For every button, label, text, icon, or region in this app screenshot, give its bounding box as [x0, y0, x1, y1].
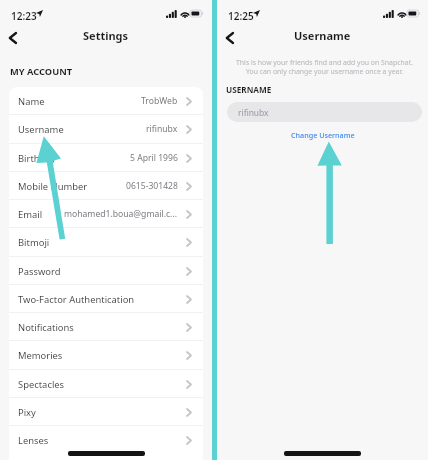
staticText: rifinubx	[238, 107, 269, 118]
button[interactable]: Notifications	[9, 313, 203, 341]
staticText: Password	[18, 265, 61, 278]
button[interactable]: Two-Factor Authentication	[9, 285, 203, 313]
staticText: 12:23	[11, 9, 37, 23]
staticText: USERNAME	[226, 84, 272, 95]
staticText: 0615-301428	[126, 180, 178, 192]
staticText: MY ACCOUNT	[10, 65, 73, 78]
staticText: Memories	[18, 349, 63, 362]
button[interactable]: Name	[9, 87, 203, 115]
button[interactable]: Back	[0, 27, 24, 49]
button[interactable]: Memories	[9, 341, 203, 369]
button[interactable]: Change Username	[285, 128, 361, 142]
button[interactable]: Bitmoji	[9, 228, 203, 256]
staticText: Username	[294, 28, 351, 43]
button[interactable]: Birthday	[9, 144, 203, 172]
staticText: 12:25	[228, 9, 254, 23]
button[interactable]: Email	[9, 200, 203, 228]
staticText: 5 April 1996	[130, 152, 178, 164]
button[interactable]: Back	[217, 27, 241, 49]
staticText: TrobWeb	[141, 95, 178, 107]
button[interactable]: Password	[9, 257, 203, 285]
staticText: rifinubx	[146, 123, 178, 135]
staticText: Two-Factor Authentication	[18, 293, 135, 306]
button[interactable]: rifinubx	[227, 102, 422, 122]
staticText: Bitmoji	[18, 236, 50, 249]
staticText: Mobile Number	[18, 180, 88, 193]
staticText: Spectacles	[18, 378, 65, 391]
button[interactable]: Lenses	[9, 426, 203, 454]
staticText: Lenses	[18, 434, 49, 447]
button[interactable]: Pixy	[9, 398, 203, 426]
staticText: Settings	[83, 28, 129, 43]
button[interactable]: Mobile Number	[9, 172, 203, 200]
staticText: Username	[18, 123, 64, 136]
staticText: mohamed1.boua@gmail.c...	[64, 208, 178, 220]
button[interactable]: Username	[9, 115, 203, 143]
staticText: This is how your friends find and add yo…	[219, 58, 428, 76]
button[interactable]: Spectacles	[9, 370, 203, 398]
staticText: Email	[18, 208, 43, 221]
staticText: Pixy	[18, 406, 36, 419]
staticText: Name	[18, 95, 45, 108]
staticText: Birthday	[18, 152, 56, 165]
staticText: Notifications	[18, 321, 74, 334]
staticText: Change Username	[291, 130, 355, 140]
